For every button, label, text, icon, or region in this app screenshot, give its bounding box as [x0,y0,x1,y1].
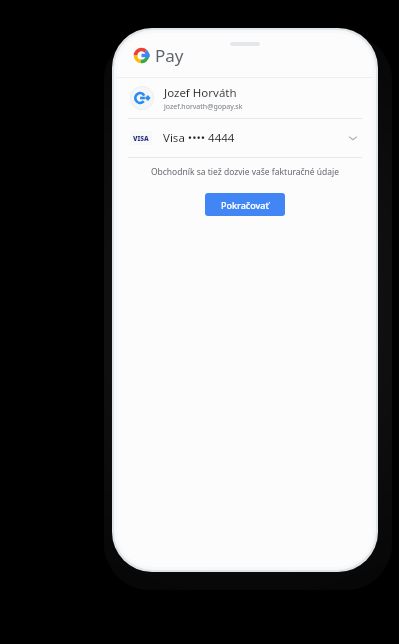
staticText: Jozef Horváth [164,85,237,101]
button[interactable]: Pokračovať [205,193,285,216]
staticText: Pay [155,44,184,67]
staticText: VISA [133,134,149,143]
staticText: Pokračovať [221,199,269,211]
other: Expand payment methods [346,131,360,145]
staticText: jozef.horvath@gopay.sk [164,102,243,112]
staticText: Obchodník sa tiež dozvie vaše fakturačné… [117,166,373,178]
button[interactable]: Jozef Horváth [117,78,373,118]
button[interactable]: VISA [117,119,373,157]
staticText: Visa •••• 4444 [163,130,235,146]
